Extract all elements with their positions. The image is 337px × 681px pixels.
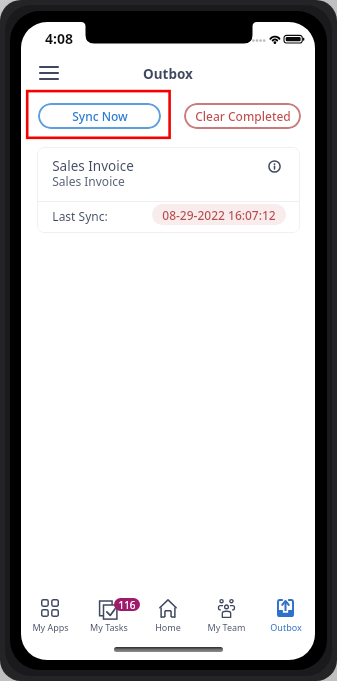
staticText: Sales Invoice	[52, 157, 134, 175]
button[interactable]: My Team	[197, 594, 256, 636]
button[interactable]: Clear Completed	[184, 103, 301, 129]
staticText: 116	[118, 598, 136, 611]
button[interactable]: Home	[138, 594, 197, 636]
staticText: Sales Invoice	[52, 173, 125, 189]
staticText: My Tasks	[90, 621, 128, 633]
button[interactable]: Menu	[32, 59, 66, 87]
staticText: 08-29-2022 16:07:12	[162, 207, 276, 223]
staticText: Outbox	[143, 65, 193, 83]
staticText: My Team	[207, 621, 246, 633]
staticText: Clear Completed	[195, 108, 291, 124]
staticText: 4:08	[45, 29, 73, 48]
button[interactable]: My Apps	[21, 594, 79, 636]
staticText: Last Sync:	[52, 208, 108, 224]
button[interactable]: Outbox	[256, 594, 315, 636]
staticText: Home	[155, 621, 181, 633]
button[interactable]: Sales Invoice	[37, 147, 300, 233]
staticText: Outbox	[270, 621, 302, 633]
button[interactable]: 116	[79, 594, 138, 636]
button[interactable]: Sync Now	[38, 103, 161, 129]
button[interactable]: Info	[263, 155, 285, 177]
staticText: My Apps	[32, 621, 69, 633]
staticText: Sync Now	[72, 108, 128, 124]
